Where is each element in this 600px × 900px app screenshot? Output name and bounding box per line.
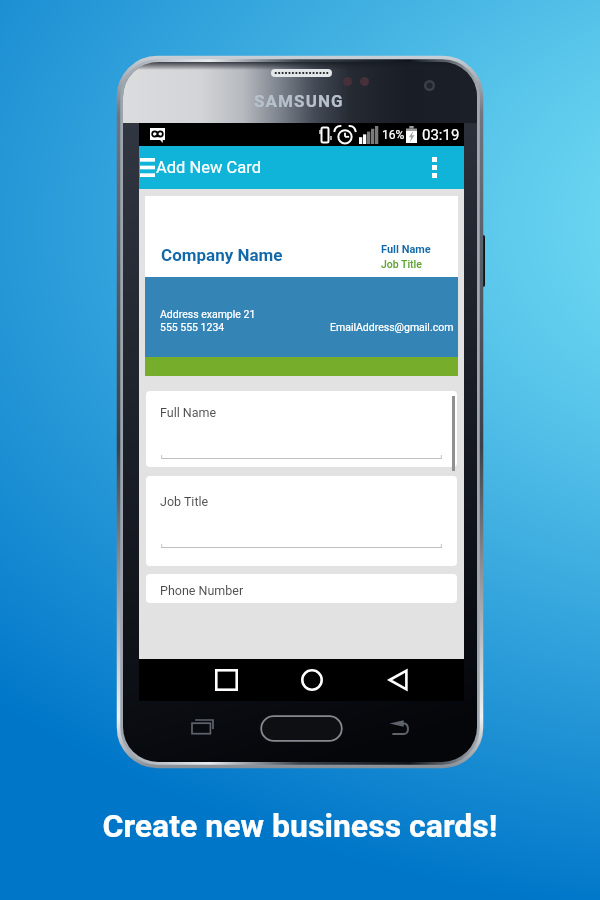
staticText: Job Title [160, 494, 209, 509]
button[interactable]: Full Name [146, 391, 457, 467]
button[interactable]: Recent apps [191, 719, 214, 734]
button[interactable]: Phone Number [146, 574, 457, 603]
staticText: Company Name [161, 245, 283, 265]
button[interactable]: Company Name [145, 196, 458, 376]
staticText: Full Name [381, 243, 431, 256]
button[interactable]: Back [389, 720, 410, 735]
button[interactable]: More options [425, 146, 464, 189]
staticText: Full Name [160, 405, 217, 420]
staticText: SAMSUNG [254, 91, 344, 111]
button[interactable]: Overview [184, 659, 269, 701]
staticText: Address example 21 [160, 308, 256, 320]
button[interactable]: Back [355, 659, 440, 701]
staticText: EmailAddress@gmail.com [330, 321, 454, 333]
staticText: Phone Number [160, 583, 244, 598]
button[interactable]: Home [269, 659, 355, 701]
other: Menu [140, 158, 155, 177]
staticText: Job Title [381, 258, 422, 270]
button[interactable]: Menu [139, 146, 464, 189]
staticText: 16% [382, 128, 405, 142]
button[interactable]: Home [260, 715, 343, 742]
staticText: 555 555 1234 [160, 321, 225, 333]
button[interactable]: Job Title [146, 476, 457, 566]
staticText: 03:19 [422, 126, 460, 144]
staticText: Create new business cards! [0, 807, 600, 845]
staticText: Add New Card [156, 158, 261, 177]
